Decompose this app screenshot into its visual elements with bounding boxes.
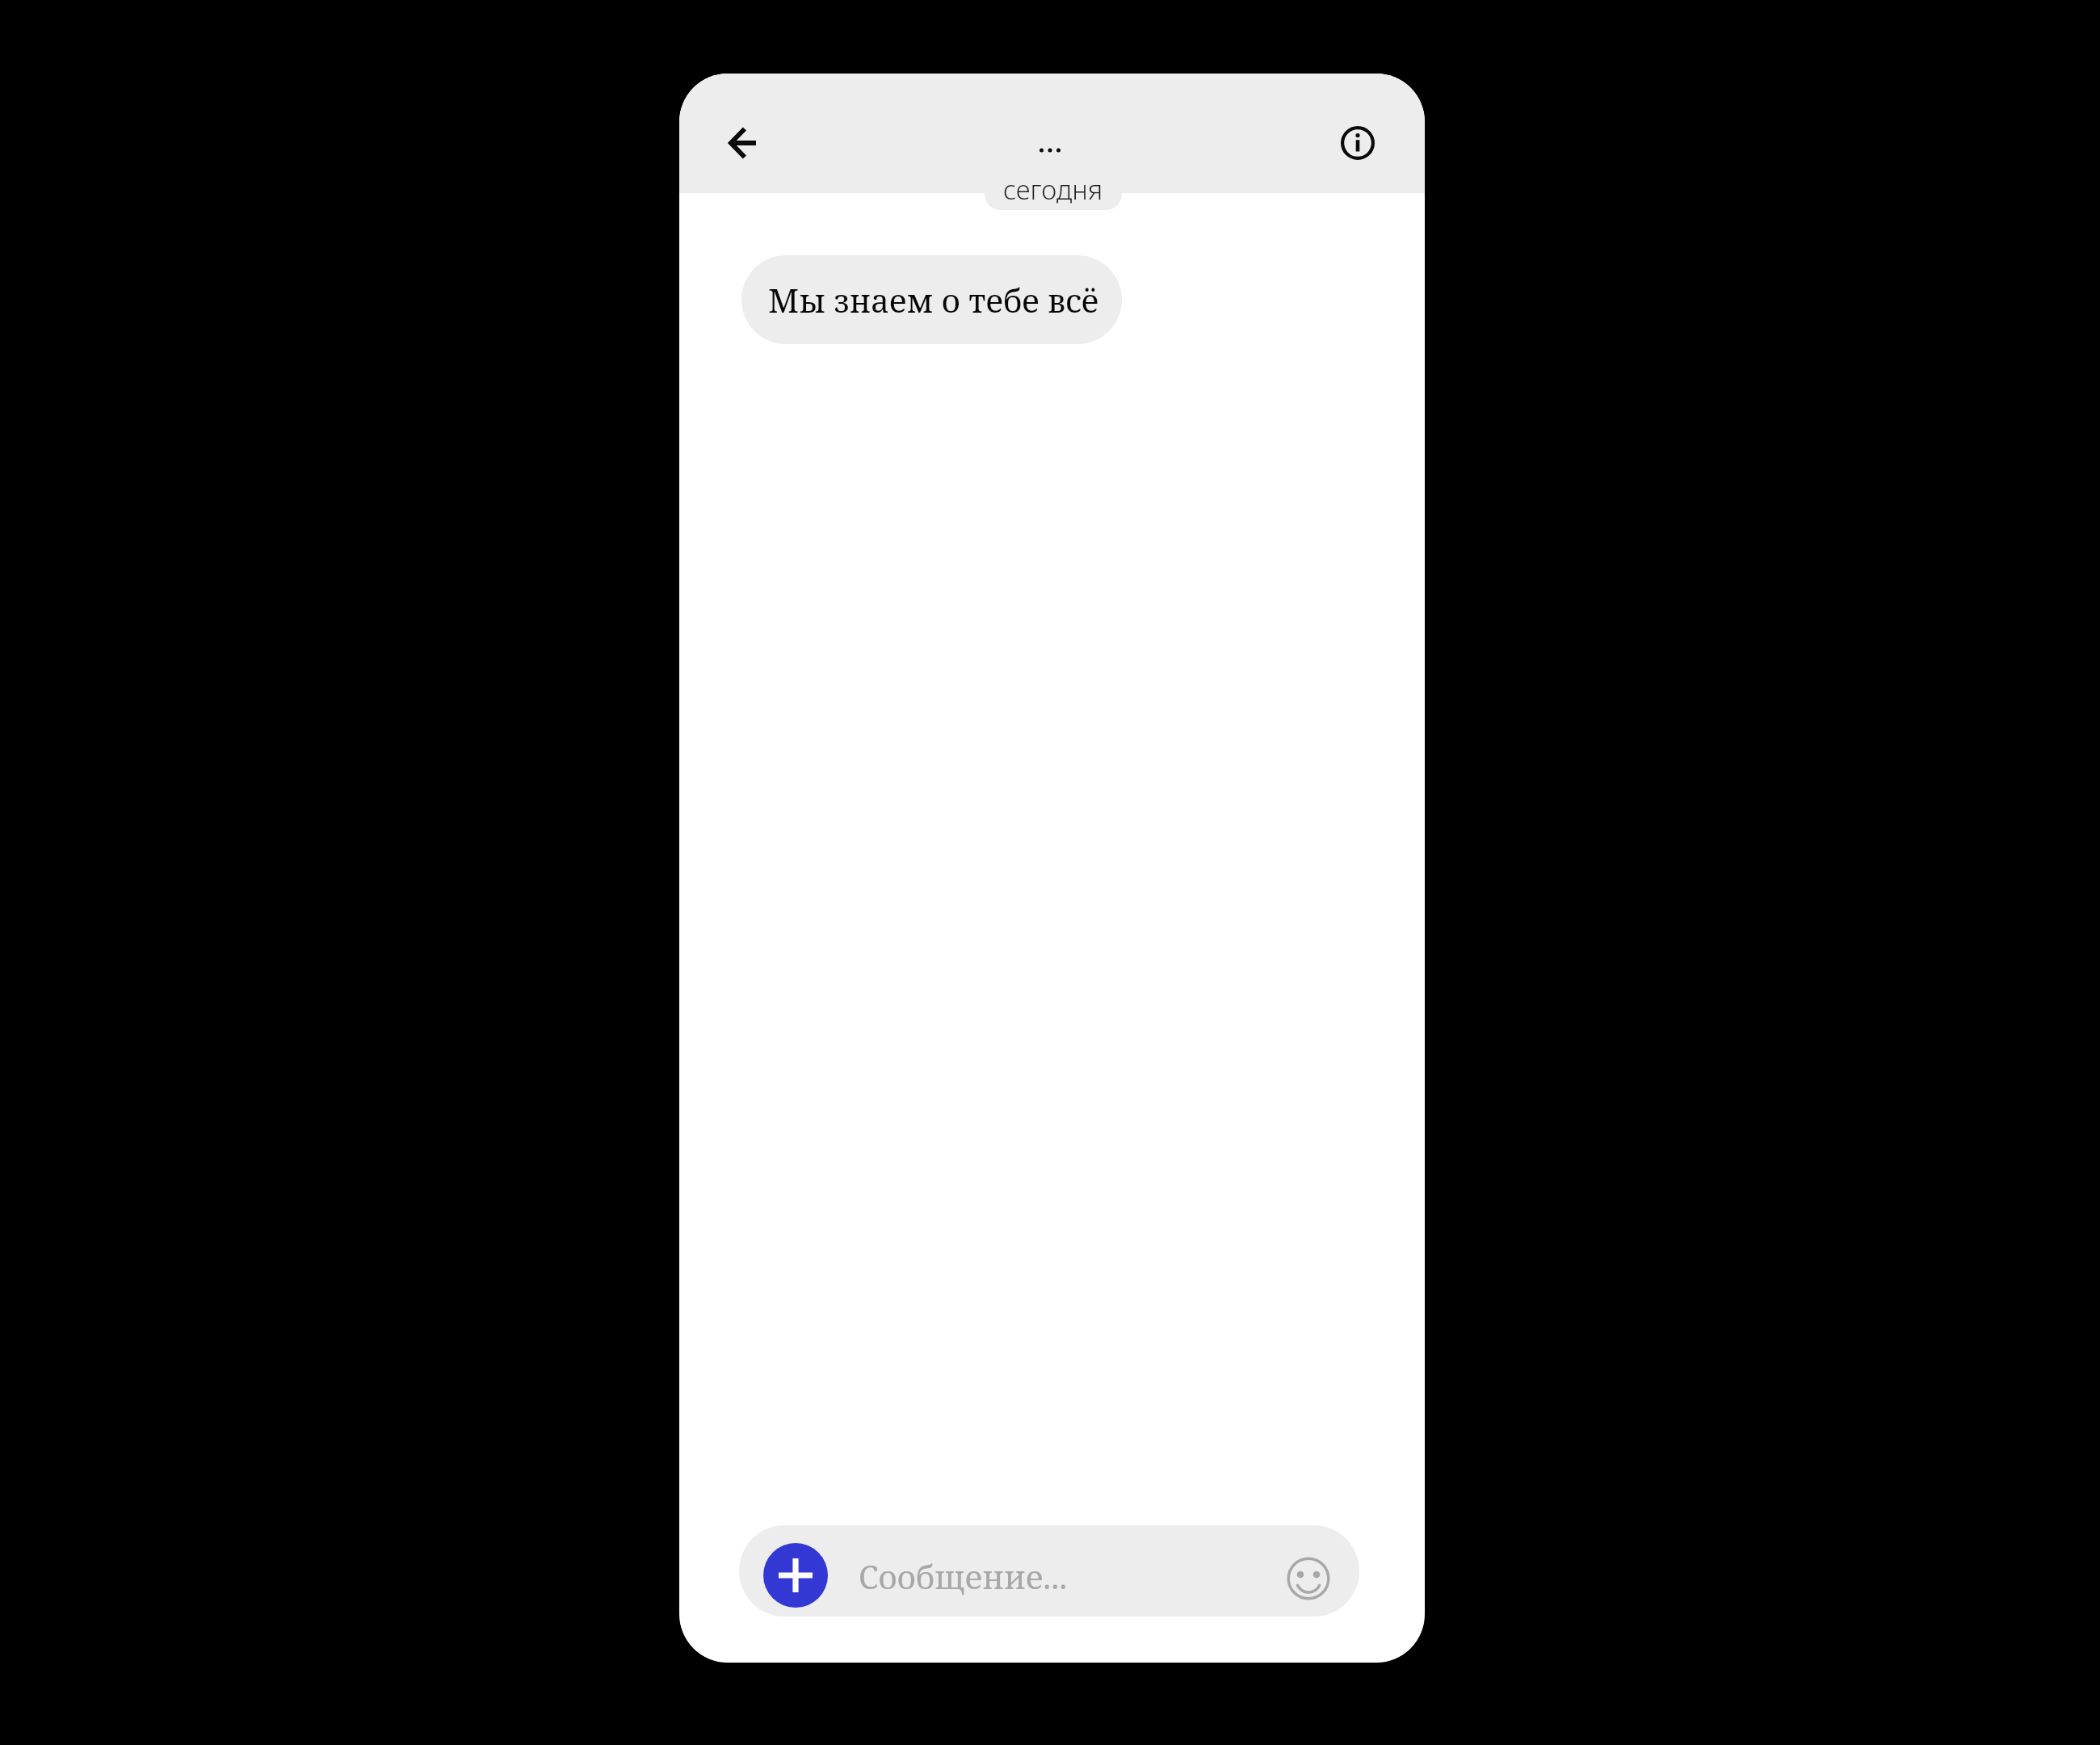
staticText: Мы знаем о тебе всё xyxy=(768,278,1099,322)
button[interactable]: Add attachment xyxy=(763,1543,828,1608)
button[interactable]: Chat title xyxy=(1024,122,1076,179)
button[interactable]: Chat info xyxy=(1325,111,1390,175)
staticText: сегодня xyxy=(1003,171,1103,208)
button[interactable]: Add attachment xyxy=(739,1525,1359,1617)
button[interactable]: Emoji xyxy=(1282,1552,1335,1605)
button[interactable]: Мы знаем о тебе всё xyxy=(741,255,1122,344)
staticText: Сообщение... xyxy=(859,1554,1068,1598)
button[interactable]: сегодня xyxy=(985,168,1122,210)
button[interactable]: Back xyxy=(710,111,775,175)
